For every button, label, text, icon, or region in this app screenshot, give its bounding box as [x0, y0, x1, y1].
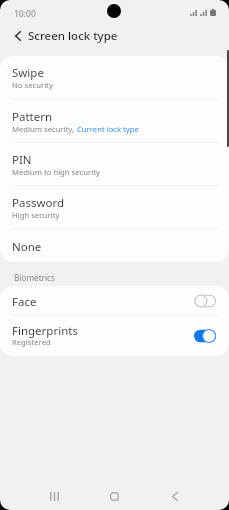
- staticText: Pattern: [12, 109, 53, 125]
- button[interactable]: Back: [155, 477, 195, 510]
- button[interactable]: PIN: [0, 143, 229, 185]
- button[interactable]: Recent apps: [34, 477, 74, 510]
- staticText: 10:00: [14, 8, 36, 20]
- button[interactable]: Home: [94, 477, 134, 510]
- button[interactable]: Fingerprints: [0, 316, 229, 356]
- staticText: PIN: [12, 152, 32, 168]
- staticText: High security: [12, 210, 60, 220]
- staticText: Face: [12, 294, 37, 310]
- staticText: Swipe: [12, 65, 44, 81]
- staticText: Registered: [12, 337, 51, 347]
- button[interactable]: Swipe: [0, 56, 229, 99]
- staticText: No security: [12, 80, 53, 90]
- staticText: Current lock type: [77, 124, 139, 134]
- staticText: Screen lock type: [28, 28, 118, 44]
- button[interactable]: None: [0, 229, 229, 262]
- staticText: Biometrics: [14, 272, 55, 283]
- staticText: Fingerprints: [12, 323, 78, 339]
- staticText: Password: [12, 195, 65, 211]
- staticText: Medium to high security: [12, 167, 100, 177]
- button[interactable]: Pattern: [0, 100, 229, 142]
- button[interactable]: Face: [0, 286, 229, 315]
- staticText: Medium security,: [12, 124, 77, 134]
- button[interactable]: Navigate up: [5, 23, 31, 49]
- button[interactable]: Password: [0, 186, 229, 228]
- staticText: None: [12, 239, 42, 255]
